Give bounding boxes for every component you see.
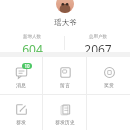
staticText: 留言 [60, 82, 70, 88]
staticText: 群发 [16, 119, 26, 125]
staticText: 瑶大爷 [54, 18, 77, 27]
button[interactable]: 奖赏 [87, 57, 130, 94]
button[interactable]: Profile avatar [56, 0, 74, 13]
button[interactable]: 消息 [0, 57, 42, 94]
staticText: 消息 [16, 82, 26, 88]
staticText: 群发历史 [55, 119, 75, 125]
staticText: 奖赏 [104, 82, 114, 88]
button[interactable]: 新增人数 [0, 34, 64, 52]
button[interactable]: 群发历史 [43, 95, 86, 130]
button[interactable]: 留言 [43, 57, 86, 94]
button[interactable]: 总用户数 [65, 34, 130, 52]
staticText: 新增人数 [23, 34, 41, 40]
staticText: 总用户数 [89, 34, 107, 40]
staticText: 604 [22, 41, 43, 52]
staticText: 2067 [84, 41, 112, 52]
button[interactable]: 群发 [0, 95, 42, 130]
staticText: 10 [24, 63, 30, 69]
